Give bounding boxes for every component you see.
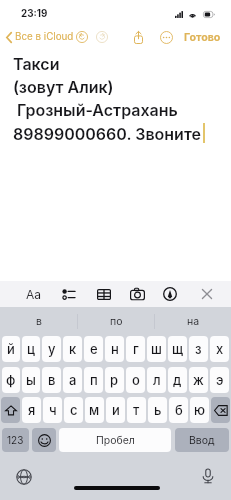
staticText: а (69, 372, 77, 388)
staticText: Такси (13, 54, 60, 73)
staticText: 89899000660. Звоните (13, 124, 201, 143)
staticText: о (132, 372, 140, 388)
button[interactable]: а (63, 367, 82, 393)
button[interactable]: Share (132, 30, 145, 45)
staticText: Грозный-Астрахань (13, 100, 178, 119)
button[interactable]: Ввод (175, 428, 229, 452)
button[interactable]: в (0, 307, 77, 336)
button[interactable]: Redo (96, 31, 108, 43)
button[interactable]: ф (2, 367, 20, 393)
button[interactable]: к (63, 336, 82, 362)
button[interactable]: Next keyboard (16, 469, 32, 485)
staticText: б (175, 402, 183, 418)
button[interactable]: Markup (156, 281, 184, 307)
button[interactable]: т (127, 397, 146, 423)
staticText: и (112, 402, 120, 418)
staticText: г (133, 341, 139, 357)
button[interactable]: на (155, 307, 231, 336)
button[interactable]: р (105, 367, 124, 393)
button[interactable]: п (84, 367, 103, 393)
staticText: 23:19 (21, 8, 48, 20)
staticText: на (187, 315, 200, 328)
staticText: д (173, 372, 182, 388)
staticText: (зовут Алик) (13, 77, 114, 96)
staticText: ж (193, 372, 204, 388)
staticText: ь (154, 402, 162, 418)
button[interactable]: Готово (184, 31, 221, 44)
staticText: Aa (26, 287, 42, 302)
button[interactable]: 123 (2, 428, 29, 452)
staticText: х (216, 341, 224, 357)
button[interactable]: ю (190, 397, 209, 423)
staticText: н (111, 341, 119, 357)
button[interactable]: в (42, 367, 61, 393)
button[interactable]: л (147, 367, 166, 393)
staticText: я (28, 402, 36, 418)
button[interactable]: я (22, 397, 41, 423)
staticText: к (69, 341, 77, 357)
staticText: Ввод (189, 434, 215, 447)
button[interactable]: ы (22, 367, 40, 393)
button[interactable]: й (2, 336, 20, 362)
staticText: м (89, 402, 100, 418)
staticText: Пробел (96, 434, 135, 447)
button[interactable]: б (169, 397, 188, 423)
staticText: ю (194, 402, 206, 418)
staticText: ч (49, 402, 57, 418)
staticText: л (153, 372, 161, 388)
staticText: в (36, 315, 42, 328)
button[interactable]: Camera (123, 281, 151, 307)
button[interactable]: Все в iCloud (4, 28, 76, 46)
staticText: р (110, 372, 119, 388)
button[interactable]: о (126, 367, 145, 393)
button[interactable]: ш (147, 336, 166, 362)
button[interactable]: г (126, 336, 145, 362)
staticText: 123 (7, 434, 24, 446)
button[interactable]: More (160, 31, 173, 44)
staticText: т (133, 402, 140, 418)
staticText: е (90, 341, 98, 357)
button[interactable]: ц (22, 336, 40, 362)
staticText: щ (172, 341, 184, 357)
staticText: з (195, 341, 202, 357)
staticText: по (110, 315, 123, 328)
button[interactable]: ь (148, 397, 167, 423)
button[interactable]: Checklist (54, 281, 82, 307)
button[interactable]: Undo (76, 31, 88, 43)
staticText: ы (26, 372, 36, 388)
staticText: Все в iCloud (15, 31, 74, 43)
button[interactable]: Format (20, 281, 48, 307)
button[interactable]: Delete (211, 397, 230, 423)
button[interactable]: Close keyboard (193, 281, 221, 307)
button[interactable]: по (78, 307, 154, 336)
button[interactable]: у (42, 336, 61, 362)
button[interactable]: ж (189, 367, 208, 393)
staticText: ц (27, 341, 36, 357)
button[interactable]: н (105, 336, 124, 362)
staticText: э (216, 372, 224, 388)
button[interactable]: ч (43, 397, 62, 423)
staticText: в (48, 372, 56, 388)
button[interactable]: д (168, 367, 187, 393)
button[interactable]: Table (90, 281, 118, 307)
staticText: ш (151, 341, 162, 357)
button[interactable]: с (64, 397, 83, 423)
button[interactable]: е (84, 336, 103, 362)
staticText: й (7, 341, 15, 357)
button[interactable]: Пробел (59, 428, 171, 452)
staticText: у (48, 341, 56, 357)
button[interactable]: Emoji (32, 428, 56, 452)
button[interactable]: з (189, 336, 208, 362)
button[interactable]: и (106, 397, 125, 423)
button[interactable]: э (210, 367, 229, 393)
button[interactable]: х (210, 336, 229, 362)
button[interactable]: м (85, 397, 104, 423)
staticText: ф (6, 372, 16, 388)
staticText: п (90, 372, 98, 388)
button[interactable]: Shift (1, 397, 20, 423)
button[interactable]: Dictation (200, 468, 216, 484)
button[interactable]: щ (168, 336, 187, 362)
staticText: с (70, 402, 78, 418)
